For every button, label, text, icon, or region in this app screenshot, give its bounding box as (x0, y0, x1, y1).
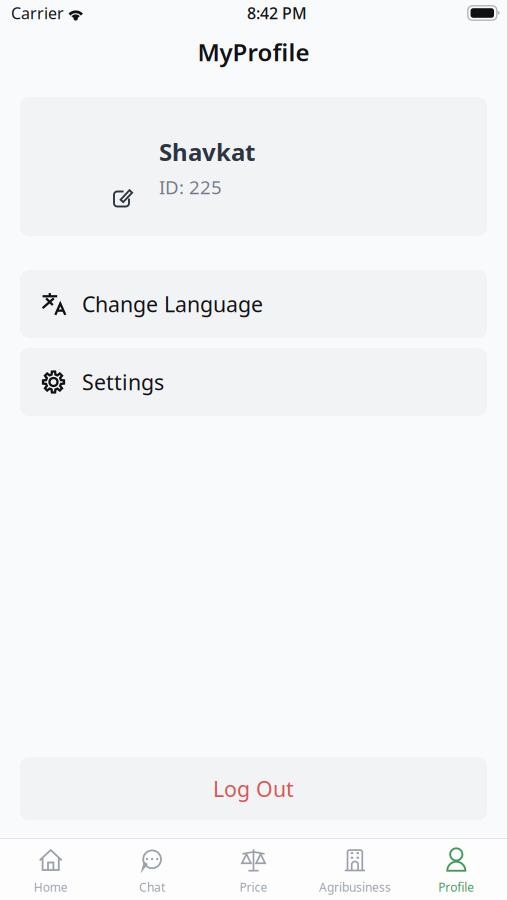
staticText: Home (34, 879, 68, 895)
staticText: Log Out (213, 774, 294, 803)
button[interactable]: Settings (20, 348, 487, 416)
button[interactable]: Profile (406, 838, 507, 900)
button[interactable]: Log Out (20, 757, 487, 820)
staticText: MyProfile (197, 36, 309, 68)
staticText: Shavkat (159, 136, 255, 168)
button[interactable]: Price (203, 838, 304, 900)
staticText: Price (239, 879, 267, 895)
staticText: Change Language (82, 290, 263, 318)
staticText: Chat (139, 879, 165, 895)
button[interactable]: Change Language (20, 270, 487, 338)
staticText: ID: 225 (159, 174, 222, 199)
button[interactable]: Home (0, 838, 101, 900)
staticText: Agribusiness (319, 879, 391, 895)
staticText: Carrier (11, 2, 64, 24)
button[interactable]: Chat (101, 838, 203, 900)
button[interactable]: Agribusiness (304, 838, 406, 900)
staticText: Settings (82, 368, 164, 396)
staticText: 8:42 PM (247, 2, 307, 24)
staticText: Profile (438, 879, 474, 895)
